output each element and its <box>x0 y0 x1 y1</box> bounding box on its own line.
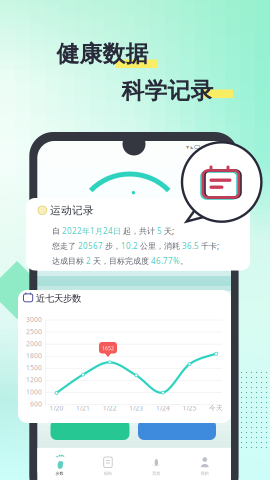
button[interactable]: 我的 <box>181 452 229 480</box>
staticText: 1/22 <box>103 404 117 412</box>
staticText: 健康数据 <box>56 40 148 68</box>
staticText: 今天 <box>209 404 223 412</box>
button[interactable]: 步数 <box>35 452 83 480</box>
staticText: 2022年1月24日 <box>62 226 121 236</box>
staticText: 科学记录 <box>121 77 213 105</box>
staticText: 1/25 <box>182 404 196 412</box>
staticText: 您走了 <box>52 241 78 251</box>
staticText: 报告 <box>104 471 112 476</box>
staticText: 1200 <box>26 375 42 384</box>
staticText: 运动记录 <box>50 204 94 217</box>
staticText: 10.2 <box>121 241 138 251</box>
staticText: 1/24 <box>156 404 170 412</box>
button[interactable]: 冥想 <box>132 452 180 480</box>
staticText: 自 <box>52 226 62 236</box>
button[interactable] <box>50 420 129 440</box>
staticText: 起，共计 <box>121 226 157 236</box>
staticText: 5 <box>157 226 162 236</box>
staticText: 46.77% <box>151 256 180 266</box>
staticText: 20567 <box>78 241 103 251</box>
staticText: 2 <box>86 256 91 266</box>
staticText: 步， <box>103 241 121 251</box>
staticText: 达成目标 <box>52 256 86 266</box>
staticText: 1/21 <box>76 404 90 412</box>
staticText: ◣ <box>190 145 193 149</box>
staticText: 天，目标完成度 <box>91 256 151 266</box>
staticText: 600 <box>30 399 42 408</box>
button[interactable] <box>138 420 216 440</box>
staticText: 近七天步数 <box>36 293 81 304</box>
staticText: 1652 <box>102 345 114 352</box>
staticText: 千卡; <box>199 241 219 251</box>
staticText: 1/20 <box>49 404 63 412</box>
staticText: 36.5 <box>182 241 199 251</box>
staticText: 我的 <box>201 471 209 476</box>
staticText: 2500 <box>26 327 42 336</box>
staticText: 1500 <box>26 363 42 372</box>
staticText: 冥想 <box>152 471 160 476</box>
staticText: 2000 <box>26 339 42 348</box>
staticText: 天; <box>162 226 174 236</box>
staticText: 步数 <box>55 471 63 476</box>
staticText: 1800 <box>26 351 42 360</box>
staticText: 3000 <box>26 315 42 324</box>
button[interactable]: 报告 <box>84 452 132 480</box>
staticText: ▼ <box>186 145 189 149</box>
staticText: 公里，消耗 <box>138 241 182 251</box>
staticText: 1000 <box>26 387 42 396</box>
staticText: 。 <box>180 256 188 266</box>
staticText: 1/23 <box>129 404 143 412</box>
